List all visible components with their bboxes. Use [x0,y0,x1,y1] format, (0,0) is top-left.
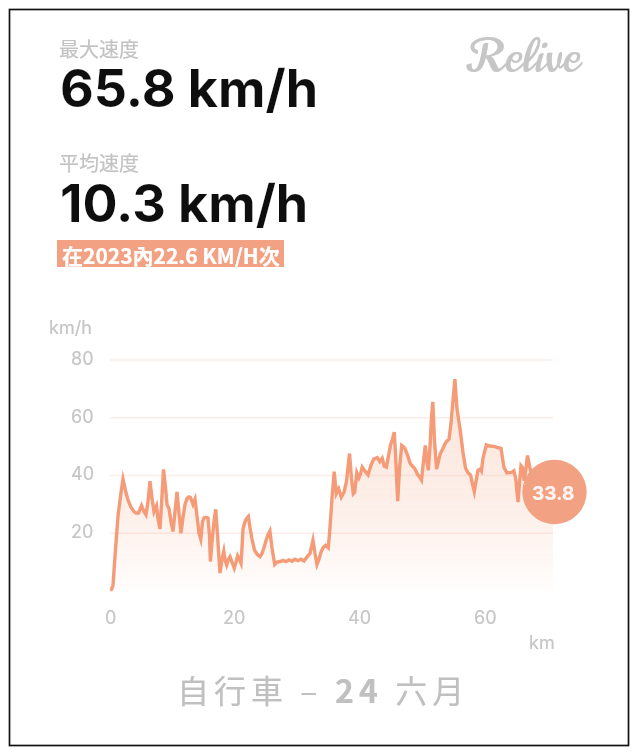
staticText: 33.8 [532,482,575,505]
staticText: 六月 [383,666,470,712]
staticText: 10.3 km/h [60,172,309,235]
staticText: 在2023內22.6 KM/H次 [62,240,280,267]
staticText: Relive [469,24,581,89]
staticText: 65.8 km/h [60,57,319,120]
staticText: 最大速度 [59,34,139,63]
button[interactable]: 33.8 [521,481,586,505]
staticText: 自行車 – [177,666,335,712]
button[interactable]: 在2023內22.6 KM/H次 [57,240,284,267]
staticText: 20 [223,607,246,629]
staticText: 60 [474,607,497,629]
staticText: 20 [71,521,94,543]
staticText: 40 [71,463,94,485]
staticText: km [529,632,555,654]
staticText: 平均速度 [59,148,139,177]
button[interactable]: 平均速度 [55,144,335,232]
staticText: 24 [335,666,383,712]
staticText: 80 [71,348,94,370]
button[interactable]: 最大速度 [55,30,335,118]
staticText: 40 [348,607,371,629]
staticText: 0 [105,607,117,629]
staticText: 60 [71,406,94,428]
button[interactable]: Relive [469,24,581,89]
staticText: km/h [49,317,92,339]
